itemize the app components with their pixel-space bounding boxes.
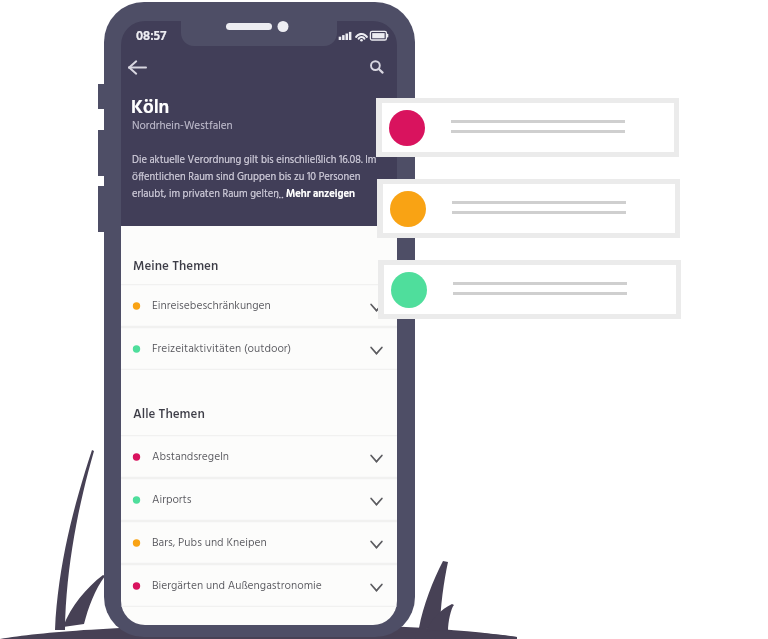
staticText: Einreisebeschränkungen [152,297,271,315]
staticText: Nordrhein-Westfalen [132,117,233,135]
button[interactable]: Topic card [378,260,681,319]
button[interactable]: Bars, Pubs und Kneipen [121,521,397,564]
staticText: Meine Themen [133,256,219,277]
staticText: erlaubt, im privaten Raum gelten [132,186,279,203]
staticText: Abstandsregeln [152,448,230,466]
staticText: Biergärten und Außengastronomie [152,577,322,595]
staticText: Alle Themen [133,404,205,425]
button[interactable]: Topic card [377,179,680,238]
button[interactable]: Search [361,51,391,81]
button[interactable]: Back [121,52,150,82]
staticText: Bars, Pubs und Kneipen [152,534,267,552]
button[interactable]: Mehr anzeigen [286,186,355,203]
staticText: Airports [152,491,192,509]
button[interactable]: Biergärten und Außengastronomie [121,564,397,607]
button[interactable]: Einreisebeschränkungen [121,284,397,327]
button[interactable]: Airports [121,478,397,521]
staticText: Die aktuelle Verordnung gilt bis einschl… [132,152,377,169]
button[interactable]: Abstandsregeln [121,435,397,478]
staticText: 08:57 [136,26,167,47]
button[interactable]: Topic card [376,98,679,157]
staticText: Köln [131,93,170,123]
staticText: öffentlichen Raum sind Gruppen bis zu 10… [132,169,361,186]
staticText: Freizeitaktivitäten (outdoor) [152,340,292,358]
button[interactable]: Freizeitaktivitäten (outdoor) [121,327,397,370]
